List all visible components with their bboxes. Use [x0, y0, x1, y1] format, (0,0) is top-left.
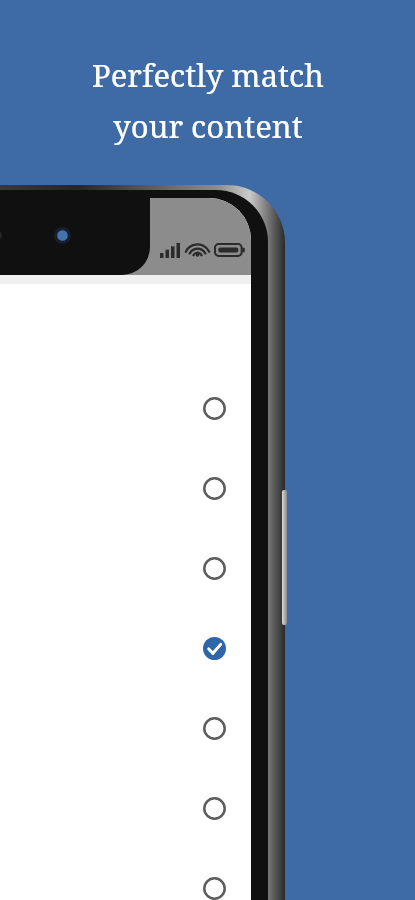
button[interactable] — [0, 448, 251, 528]
button[interactable]: Power — [282, 490, 287, 625]
button[interactable]: ent — [0, 528, 251, 608]
button[interactable]: ontent — [0, 848, 251, 900]
button[interactable] — [0, 768, 251, 848]
button[interactable]: ration — [0, 688, 251, 768]
staticText: Perfectly match — [92, 54, 324, 96]
button[interactable]: n — [0, 368, 251, 448]
staticText: your content — [113, 105, 303, 147]
button[interactable]: es — [0, 608, 251, 688]
